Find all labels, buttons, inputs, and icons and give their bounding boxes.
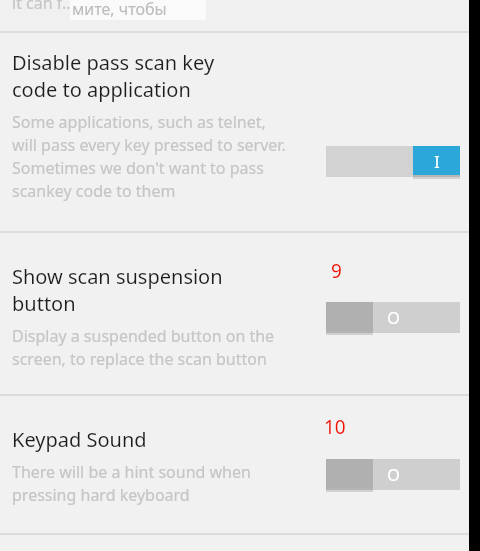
staticText: O <box>387 464 400 486</box>
button[interactable]: Disable pass scan key code to applicatio… <box>0 33 480 231</box>
button[interactable]: Show scan suspension button <box>0 233 480 394</box>
staticText: 9 <box>331 258 342 284</box>
staticText: O <box>387 307 400 329</box>
button[interactable]: Show scan suspension button toggle <box>326 302 460 333</box>
staticText: мите, чтобы <box>72 0 167 20</box>
staticText: Some applications, such as telnet, will … <box>12 111 286 202</box>
staticText: 10 <box>324 414 346 440</box>
staticText: Keypad Sound <box>12 426 147 453</box>
button[interactable]: Keypad Sound toggle <box>326 459 460 490</box>
button[interactable]: Keypad Sound <box>0 396 480 533</box>
button[interactable]: Disable pass scan key code to applicatio… <box>326 146 460 177</box>
staticText: There will be a hint sound when pressing… <box>12 461 251 506</box>
staticText: Show scan suspension button <box>12 263 223 317</box>
staticText: it can f… <box>12 0 75 14</box>
staticText: Display a suspended button on the screen… <box>12 325 275 370</box>
staticText: Disable pass scan key code to applicatio… <box>12 49 215 103</box>
staticText: I <box>434 151 440 173</box>
